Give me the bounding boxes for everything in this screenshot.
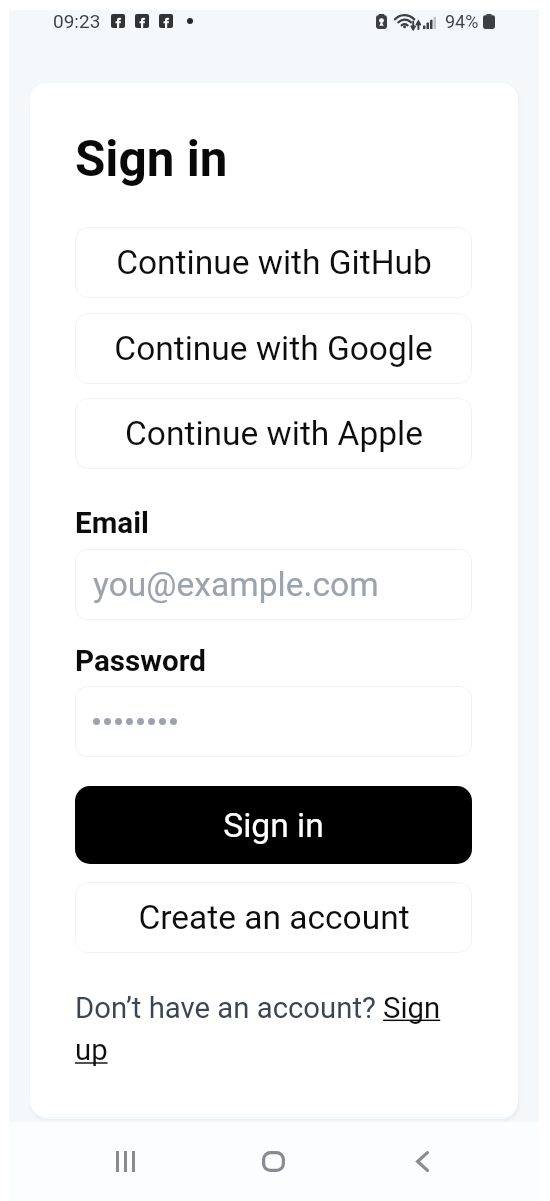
staticText: Continue with Apple [125,414,423,453]
button[interactable]: Home [199,1122,348,1201]
button[interactable]: Sign in [75,786,472,864]
staticText: Sign in [75,130,228,188]
staticText: Create an account [138,898,410,937]
staticText: Sign in [223,806,324,845]
staticText: Continue with Google [114,329,433,368]
button[interactable]: Don’t have an account? Sign up [75,991,472,1068]
button[interactable]: Continue with Google [75,313,472,384]
staticText: Email [75,506,149,541]
button[interactable]: Recent apps [51,1122,199,1201]
button[interactable]: Continue with GitHub [75,227,472,298]
button[interactable] [75,686,472,757]
button[interactable]: Back [348,1122,497,1201]
button[interactable]: you@example.com [75,549,472,620]
staticText: you@example.com [93,565,379,604]
staticText: 09:23 [53,10,101,32]
staticText: 94% [445,11,479,32]
staticText: Continue with GitHub [116,243,432,282]
button[interactable]: Create an account [75,882,472,953]
staticText: Password [75,644,206,679]
staticText: Don’t have an account? Sign up [75,991,472,1068]
button[interactable]: Continue with Apple [75,398,472,469]
